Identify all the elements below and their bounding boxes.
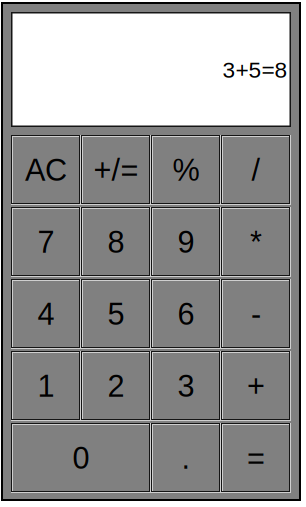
staticText: = xyxy=(247,441,265,475)
button[interactable]: 9 xyxy=(151,207,221,277)
staticText: 3+5=8 xyxy=(222,57,287,83)
button[interactable]: / xyxy=(221,135,291,205)
button[interactable]: +/= xyxy=(81,135,151,205)
button[interactable]: 3 xyxy=(151,351,221,421)
staticText: 9 xyxy=(177,225,194,259)
button[interactable]: % xyxy=(151,135,221,205)
button[interactable]: 2 xyxy=(81,351,151,421)
staticText: - xyxy=(251,297,261,331)
staticText: % xyxy=(172,153,199,187)
staticText: 7 xyxy=(37,225,54,259)
staticText: / xyxy=(251,153,260,187)
staticText: 5 xyxy=(107,297,124,331)
button[interactable]: = xyxy=(221,423,291,493)
button[interactable]: 1 xyxy=(11,351,81,421)
staticText: 4 xyxy=(37,297,54,331)
staticText: 8 xyxy=(107,225,124,259)
staticText: AC xyxy=(25,153,67,187)
staticText: 2 xyxy=(107,369,124,403)
staticText: 1 xyxy=(37,369,54,403)
button[interactable]: 8 xyxy=(81,207,151,277)
button[interactable]: 4 xyxy=(11,279,81,349)
button[interactable]: - xyxy=(221,279,291,349)
button[interactable]: 7 xyxy=(11,207,81,277)
staticText: . xyxy=(181,441,190,475)
staticText: * xyxy=(250,225,262,259)
button[interactable]: 6 xyxy=(151,279,221,349)
button[interactable]: 5 xyxy=(81,279,151,349)
button[interactable]: * xyxy=(221,207,291,277)
staticText: 3 xyxy=(177,369,194,403)
staticText: 0 xyxy=(72,441,89,475)
button[interactable]: 0 xyxy=(11,423,151,493)
staticText: + xyxy=(247,369,265,403)
button[interactable]: . xyxy=(151,423,221,493)
button[interactable]: + xyxy=(221,351,291,421)
staticText: +/= xyxy=(93,153,138,187)
staticText: 6 xyxy=(177,297,194,331)
button[interactable]: AC xyxy=(11,135,81,205)
